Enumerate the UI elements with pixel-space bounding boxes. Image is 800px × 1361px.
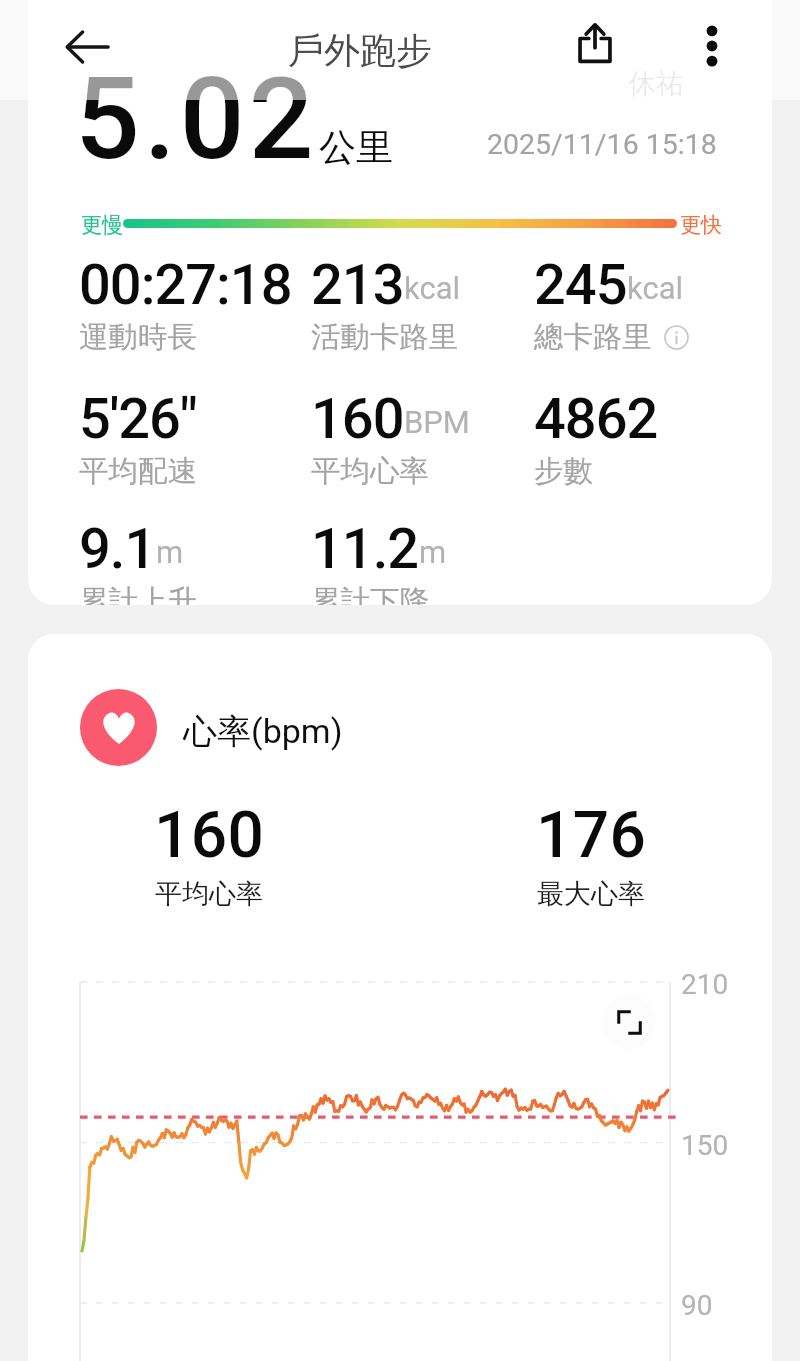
staticText: 210 [681, 968, 729, 1001]
button[interactable]: Back [58, 18, 116, 76]
staticText: 戶外跑步 [288, 28, 432, 73]
staticText: 150 [681, 1129, 729, 1162]
staticText: 00:27:18 [79, 252, 292, 318]
button[interactable]: More options [683, 17, 741, 75]
staticText: 更慢 [81, 212, 123, 238]
staticText: 活動卡路里 [311, 319, 459, 356]
staticText: 累計上升 [79, 583, 197, 605]
staticText: 心率(bpm) [183, 710, 343, 753]
staticText: 平均心率 [155, 877, 263, 911]
staticText: 245 [534, 252, 627, 318]
staticText: 總卡路里 [534, 319, 652, 356]
staticText: 累計下降 [311, 583, 429, 605]
staticText: 4862 [534, 386, 658, 452]
button[interactable]: Share [566, 13, 624, 71]
staticText: 160 [311, 386, 404, 452]
staticText: 5.02 [75, 52, 318, 186]
staticText: m [419, 534, 447, 570]
staticText: 平均心率 [311, 453, 429, 490]
staticText: 平均配速 [79, 453, 197, 490]
button[interactable]: Expand chart [602, 995, 656, 1049]
staticText: 運動時長 [79, 319, 197, 356]
staticText: 最大心率 [537, 877, 645, 911]
staticText: kcal [404, 270, 461, 306]
staticText: 步數 [534, 453, 593, 490]
staticText: m [156, 534, 184, 570]
staticText: 9.1 [79, 516, 156, 582]
staticText: 160 [154, 798, 265, 873]
staticText: 更快 [680, 212, 722, 238]
staticText: 5'26" [79, 386, 197, 452]
staticText: 176 [536, 798, 647, 873]
staticText: 213 [311, 252, 404, 318]
staticText: 2025/11/16 15:18 [487, 128, 717, 161]
staticText: 90 [681, 1289, 713, 1322]
staticText: 休祐 [628, 66, 684, 101]
staticText: kcal [627, 270, 684, 306]
staticText: BPM [404, 404, 470, 440]
staticText: 11.2 [311, 516, 419, 582]
staticText: 公里 [319, 124, 393, 171]
